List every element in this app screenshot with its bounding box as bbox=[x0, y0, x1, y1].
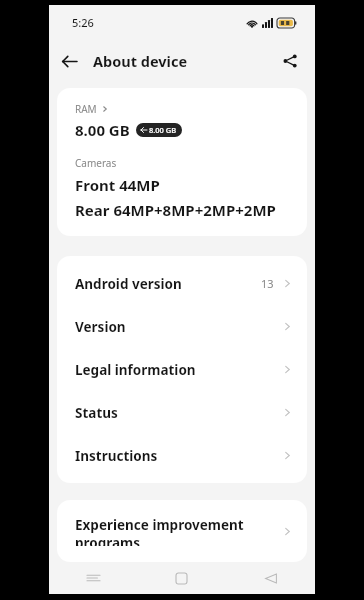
staticText: Cameras bbox=[75, 156, 117, 170]
button[interactable]: Version bbox=[57, 305, 307, 348]
staticText: Front 44MP bbox=[75, 175, 160, 195]
button[interactable]: Status bbox=[57, 391, 307, 434]
staticText: Rear 64MP+8MP+2MP+2MP bbox=[75, 200, 276, 220]
staticText: Experience improvement programs bbox=[75, 516, 282, 546]
staticText: 8.00 GB bbox=[75, 120, 130, 140]
button[interactable]: Instructions bbox=[57, 434, 307, 477]
button[interactable]: Home bbox=[137, 562, 226, 594]
staticText: 8.00 GB bbox=[149, 125, 177, 135]
button[interactable]: Experience improvement programs bbox=[57, 500, 307, 562]
staticText: Status bbox=[75, 404, 282, 422]
button[interactable]: Legal information bbox=[57, 348, 307, 391]
button[interactable]: Android version bbox=[57, 262, 307, 305]
staticText: Android version bbox=[75, 275, 261, 293]
staticText: Legal information bbox=[75, 361, 282, 379]
staticText: Instructions bbox=[75, 447, 282, 465]
staticText: About device bbox=[93, 51, 188, 71]
button[interactable]: Back bbox=[226, 562, 315, 594]
button[interactable]: RAM bbox=[75, 102, 109, 116]
staticText: RAM bbox=[75, 102, 97, 116]
button[interactable]: Share bbox=[273, 44, 307, 78]
button[interactable]: Back bbox=[49, 41, 89, 81]
staticText: 13 bbox=[261, 276, 274, 291]
staticText: 5:26 bbox=[72, 15, 94, 30]
button[interactable]: Recent apps bbox=[49, 562, 137, 594]
staticText: Version bbox=[75, 318, 282, 336]
